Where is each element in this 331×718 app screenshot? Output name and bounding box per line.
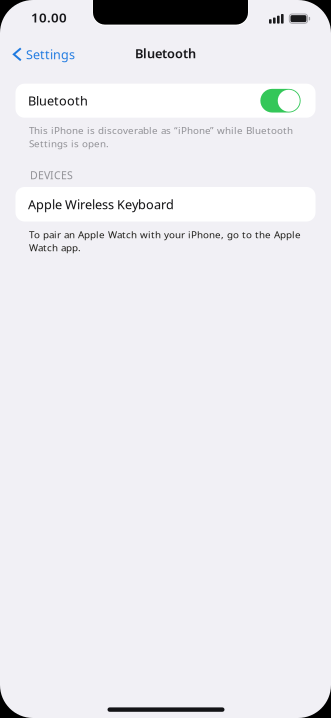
staticText: Bluetooth (28, 92, 88, 109)
button[interactable]: Settings (0, 38, 85, 71)
staticText: This iPhone is discoverable as “iPhone” … (29, 123, 293, 150)
staticText: DEVICES (30, 168, 73, 182)
staticText: To pair an Apple Watch with your iPhone,… (29, 228, 301, 254)
button[interactable]: Apple Wireless Keyboard (15, 187, 315, 221)
button[interactable]: Bluetooth (15, 84, 315, 118)
staticText: 10.00 (31, 8, 67, 26)
staticText: Bluetooth (135, 45, 196, 62)
staticText: Settings (26, 46, 75, 63)
staticText: Apple Wireless Keyboard (28, 196, 174, 213)
